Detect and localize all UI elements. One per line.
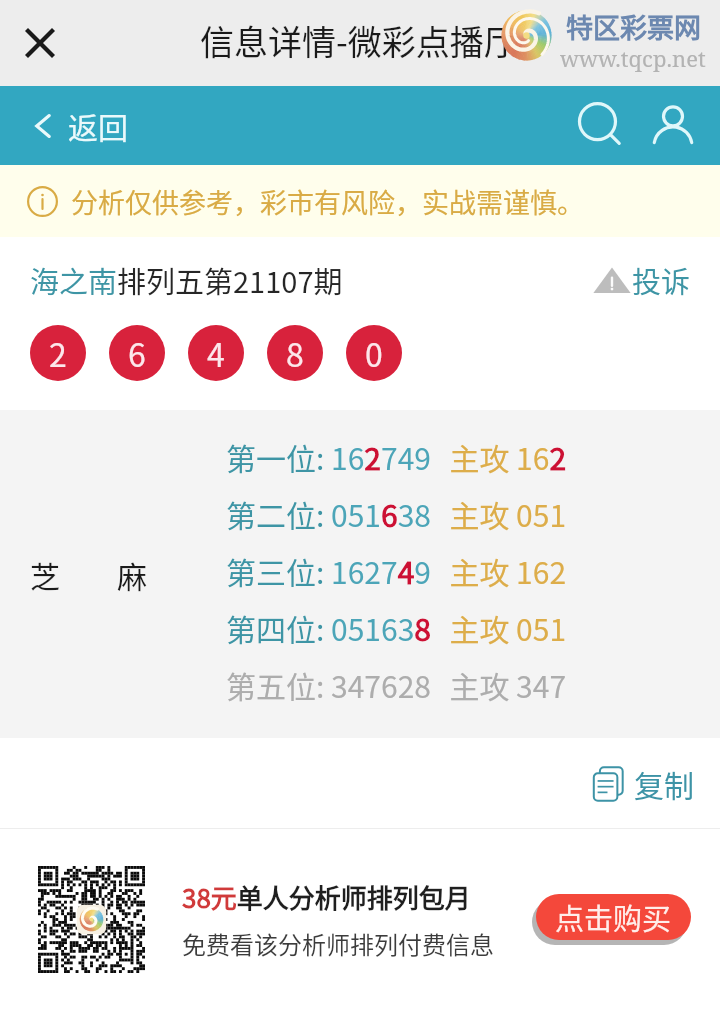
- staticText: 第一位: 162749 主攻 162: [226, 435, 567, 478]
- staticText: 8: [286, 330, 304, 376]
- button[interactable]: 投诉: [593, 259, 691, 301]
- staticText: 2: [49, 330, 67, 376]
- staticText: 4: [207, 330, 225, 376]
- staticText: 返回: [68, 104, 128, 147]
- staticText: 海之南排列五第21107期: [30, 259, 343, 301]
- staticText: 第五位: 347628 主攻 347: [226, 663, 567, 706]
- button[interactable]: 返回: [0, 104, 146, 147]
- button[interactable]: 点击购买: [536, 894, 691, 940]
- staticText: 点击购买: [555, 896, 672, 938]
- button[interactable]: Close: [10, 13, 70, 73]
- button[interactable]: 复制: [590, 762, 720, 805]
- staticText: 第二位: 051638 主攻 051: [226, 492, 567, 535]
- button[interactable]: Search: [570, 95, 632, 157]
- staticText: 特区彩票网: [566, 7, 701, 46]
- staticText: 第四位: 051638 主攻 051: [226, 606, 567, 649]
- staticText: 信息详情-微彩点播厅: [200, 16, 518, 65]
- staticText: 投诉: [632, 259, 691, 301]
- staticText: 复制: [634, 762, 694, 805]
- staticText: www.tqcp.net: [560, 43, 706, 73]
- staticText: 免费看该分析师排列付费信息: [182, 926, 494, 961]
- staticText: 6: [128, 330, 146, 376]
- staticText: 芝: [30, 553, 60, 596]
- staticText: 38元单人分析师排列包月: [182, 878, 471, 916]
- staticText: 0: [365, 330, 383, 376]
- staticText: 分析仅供参考，彩市有风险，实战需谨慎。: [71, 182, 584, 221]
- button[interactable]: Profile: [642, 95, 704, 157]
- staticText: 麻: [117, 553, 147, 596]
- staticText: 第三位: 162749 主攻 162: [226, 549, 567, 592]
